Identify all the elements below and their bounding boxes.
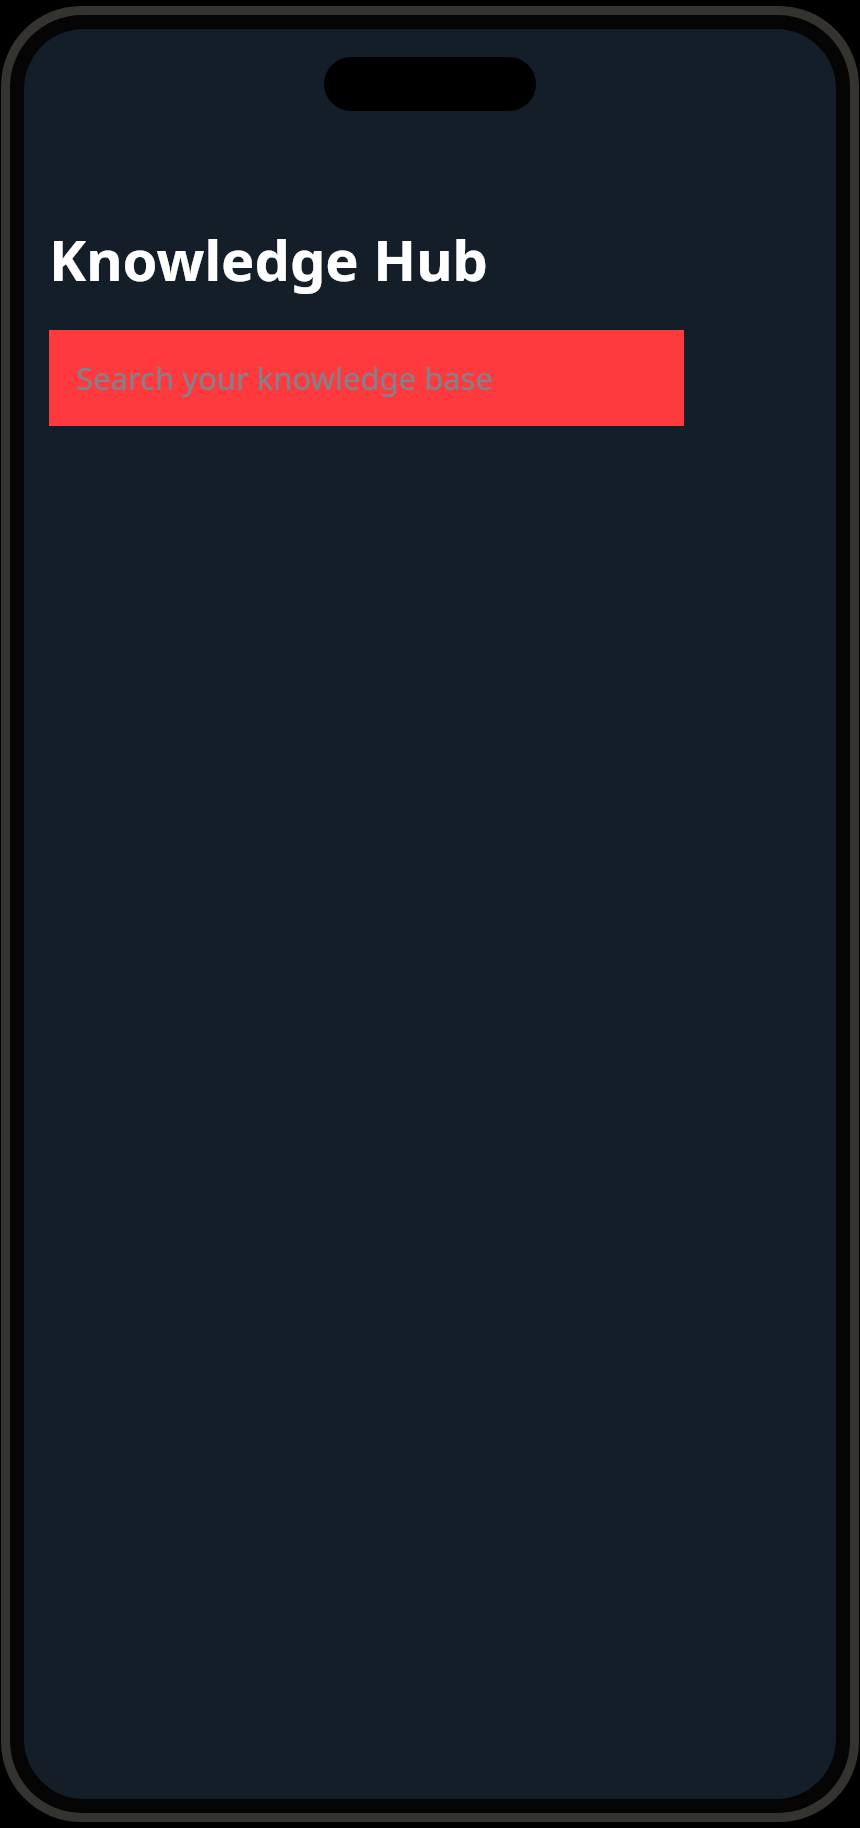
staticText: Knowledge Hub: [49, 221, 488, 297]
staticText: Search your knowledge base: [76, 357, 493, 399]
button[interactable]: Search your knowledge base: [49, 330, 684, 426]
